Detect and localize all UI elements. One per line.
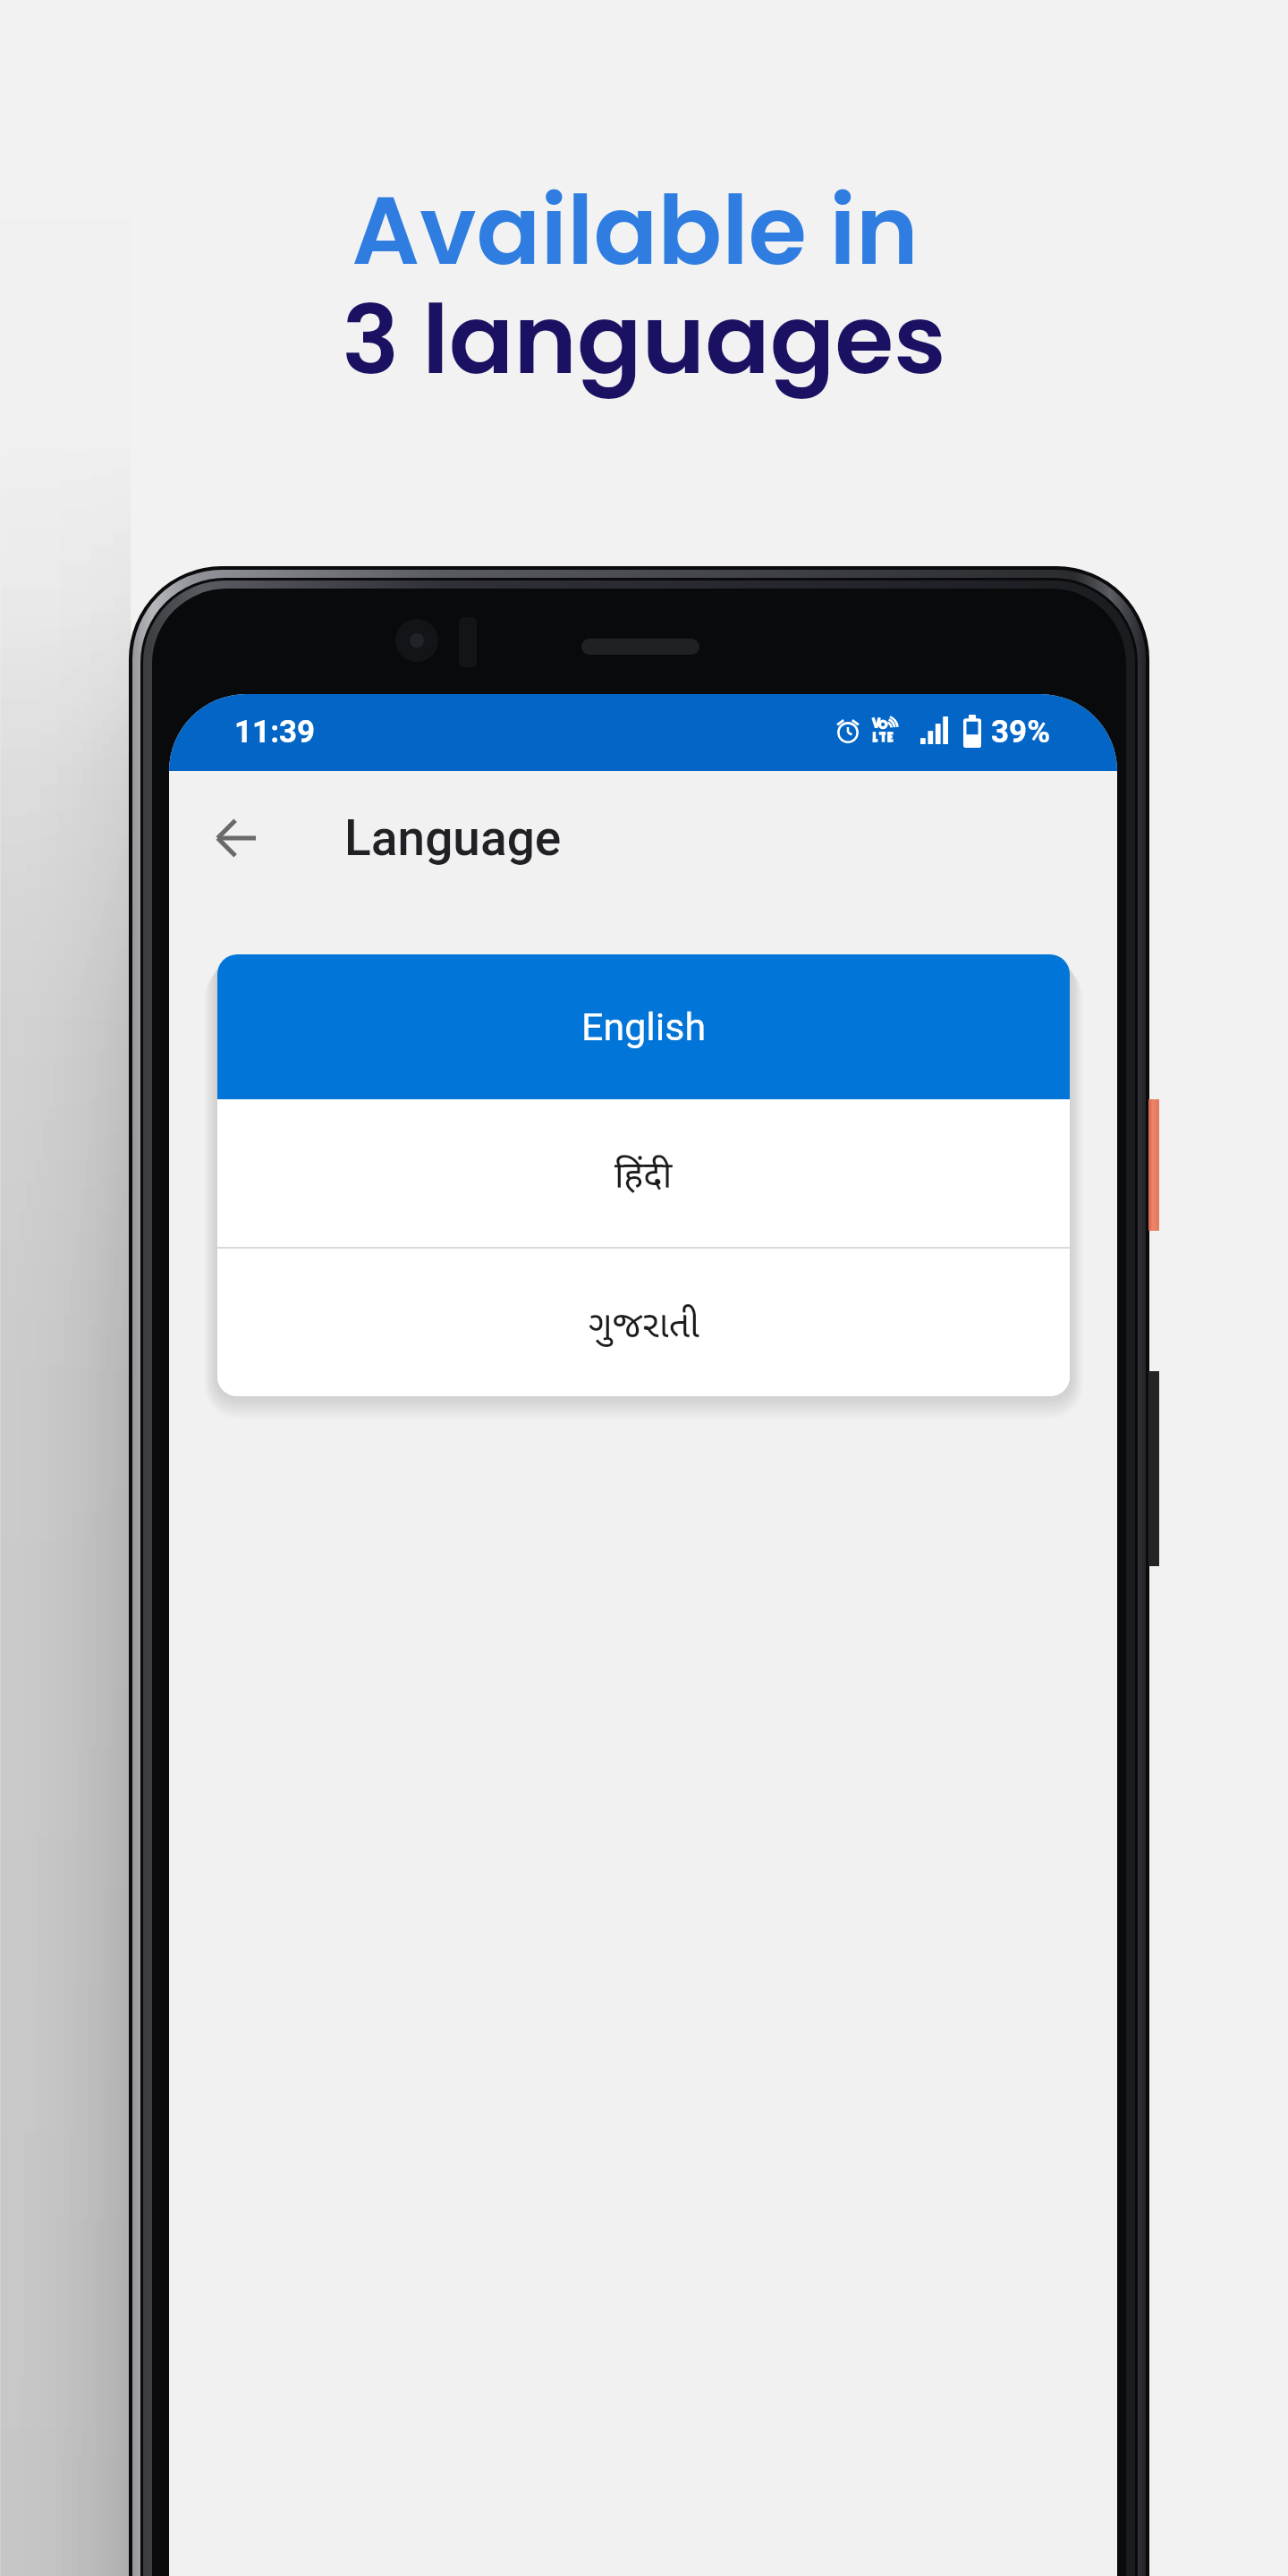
- staticText: English: [581, 1004, 707, 1049]
- button[interactable]: ગુજરાતી: [217, 1249, 1070, 1396]
- staticText: Available in: [0, 165, 1279, 297]
- button[interactable]: हिंदी: [217, 1099, 1070, 1247]
- staticText: ગુજરાતી: [589, 1298, 699, 1348]
- staticText: हिंदी: [614, 1148, 673, 1199]
- button[interactable]: Back: [193, 795, 279, 881]
- button[interactable]: English: [217, 954, 1070, 1099]
- staticText: 11:39: [234, 714, 316, 750]
- staticText: 3 languages: [0, 273, 1288, 407]
- staticText: 39%: [991, 714, 1051, 750]
- staticText: Language: [344, 809, 562, 867]
